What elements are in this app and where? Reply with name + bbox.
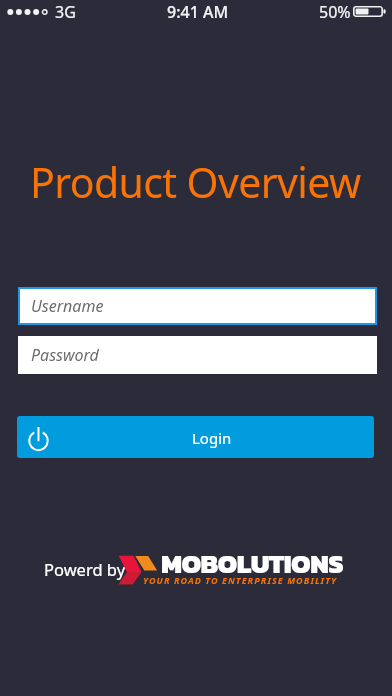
other: Mobolutions logo xyxy=(116,552,162,588)
staticText: Username xyxy=(31,295,104,317)
button[interactable]: Login xyxy=(17,416,374,458)
staticText: YOUR ROAD TO ENTERPRISE MOBILITY xyxy=(143,574,338,586)
staticText: 9:41 AM xyxy=(167,1,229,23)
staticText: Login xyxy=(192,428,232,448)
staticText: 50% xyxy=(319,1,351,23)
button[interactable]: Password xyxy=(18,336,377,374)
staticText: Password xyxy=(31,344,99,366)
staticText: Powerd by xyxy=(44,558,126,580)
staticText: Product Overview xyxy=(30,154,361,210)
other: Power xyxy=(27,424,55,452)
other: Battery 50 percent xyxy=(353,6,387,18)
staticText: 3G xyxy=(55,1,76,23)
button[interactable]: Username xyxy=(18,287,377,325)
staticText: MOBOLUTIONS xyxy=(161,543,344,583)
